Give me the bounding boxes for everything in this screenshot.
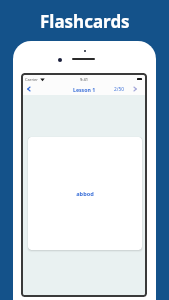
button[interactable]: Back: [23, 83, 34, 95]
staticText: Lesson 1: [73, 86, 96, 93]
button[interactable]: abbod: [28, 137, 142, 250]
staticText: Flashcards: [40, 10, 130, 33]
staticText: Carrier: [25, 77, 39, 82]
button[interactable]: Next card: [129, 83, 140, 95]
staticText: 2/50: [114, 86, 125, 93]
staticText: 9:41: [80, 77, 88, 82]
staticText: abbod: [76, 190, 94, 198]
